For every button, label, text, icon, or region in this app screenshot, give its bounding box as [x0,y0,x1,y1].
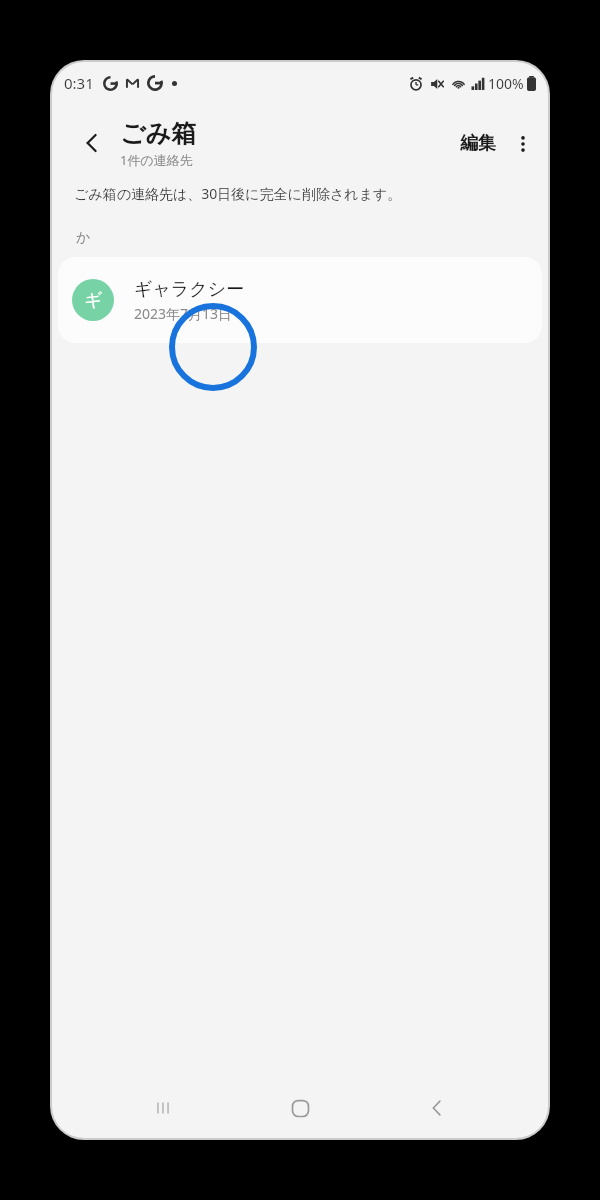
button[interactable]: 最近のアプリ [137,1082,189,1134]
staticText: 100% [488,74,524,93]
staticText: ギ [84,289,103,312]
button[interactable]: 編集 [452,122,504,165]
button[interactable]: その他のオプション [504,125,542,163]
button[interactable]: ギ [58,257,542,343]
staticText: 1件の連絡先 [120,151,193,169]
staticText: ごみ箱 [120,118,197,149]
button[interactable]: ホーム [274,1082,326,1134]
staticText: ごみ箱の連絡先は、30日後に完全に削除されます。 [74,184,402,203]
staticText: 2023年7月13日 [134,304,233,323]
staticText: 0:31 [64,73,94,93]
button[interactable]: 戻る [411,1082,463,1134]
staticText: ギャラクシー [134,278,245,301]
staticText: 編集 [460,132,496,155]
staticText: か [76,229,91,247]
button[interactable]: 戻る [70,121,114,165]
